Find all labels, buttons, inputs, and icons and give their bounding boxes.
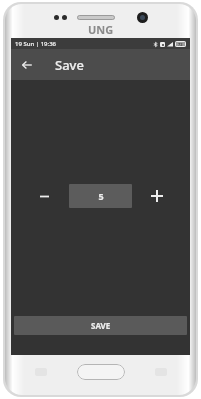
staticText: 19 Sun | 19:36 — [15, 40, 57, 48]
staticText: SAVE — [91, 320, 111, 331]
button[interactable]: Back — [11, 49, 42, 80]
staticText: 72 — [178, 42, 183, 47]
button[interactable]: Decrease — [25, 184, 63, 208]
staticText: Save — [55, 56, 84, 74]
button[interactable]: SAVE — [14, 316, 187, 335]
button[interactable]: Increase — [138, 184, 176, 208]
staticText: 5 — [98, 190, 104, 202]
button[interactable]: 5 — [69, 184, 132, 208]
staticText: UNG — [88, 22, 114, 37]
